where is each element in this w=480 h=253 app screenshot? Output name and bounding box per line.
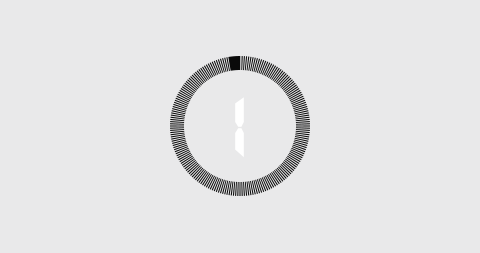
button[interactable]: Compass dial bbox=[0, 0, 480, 253]
